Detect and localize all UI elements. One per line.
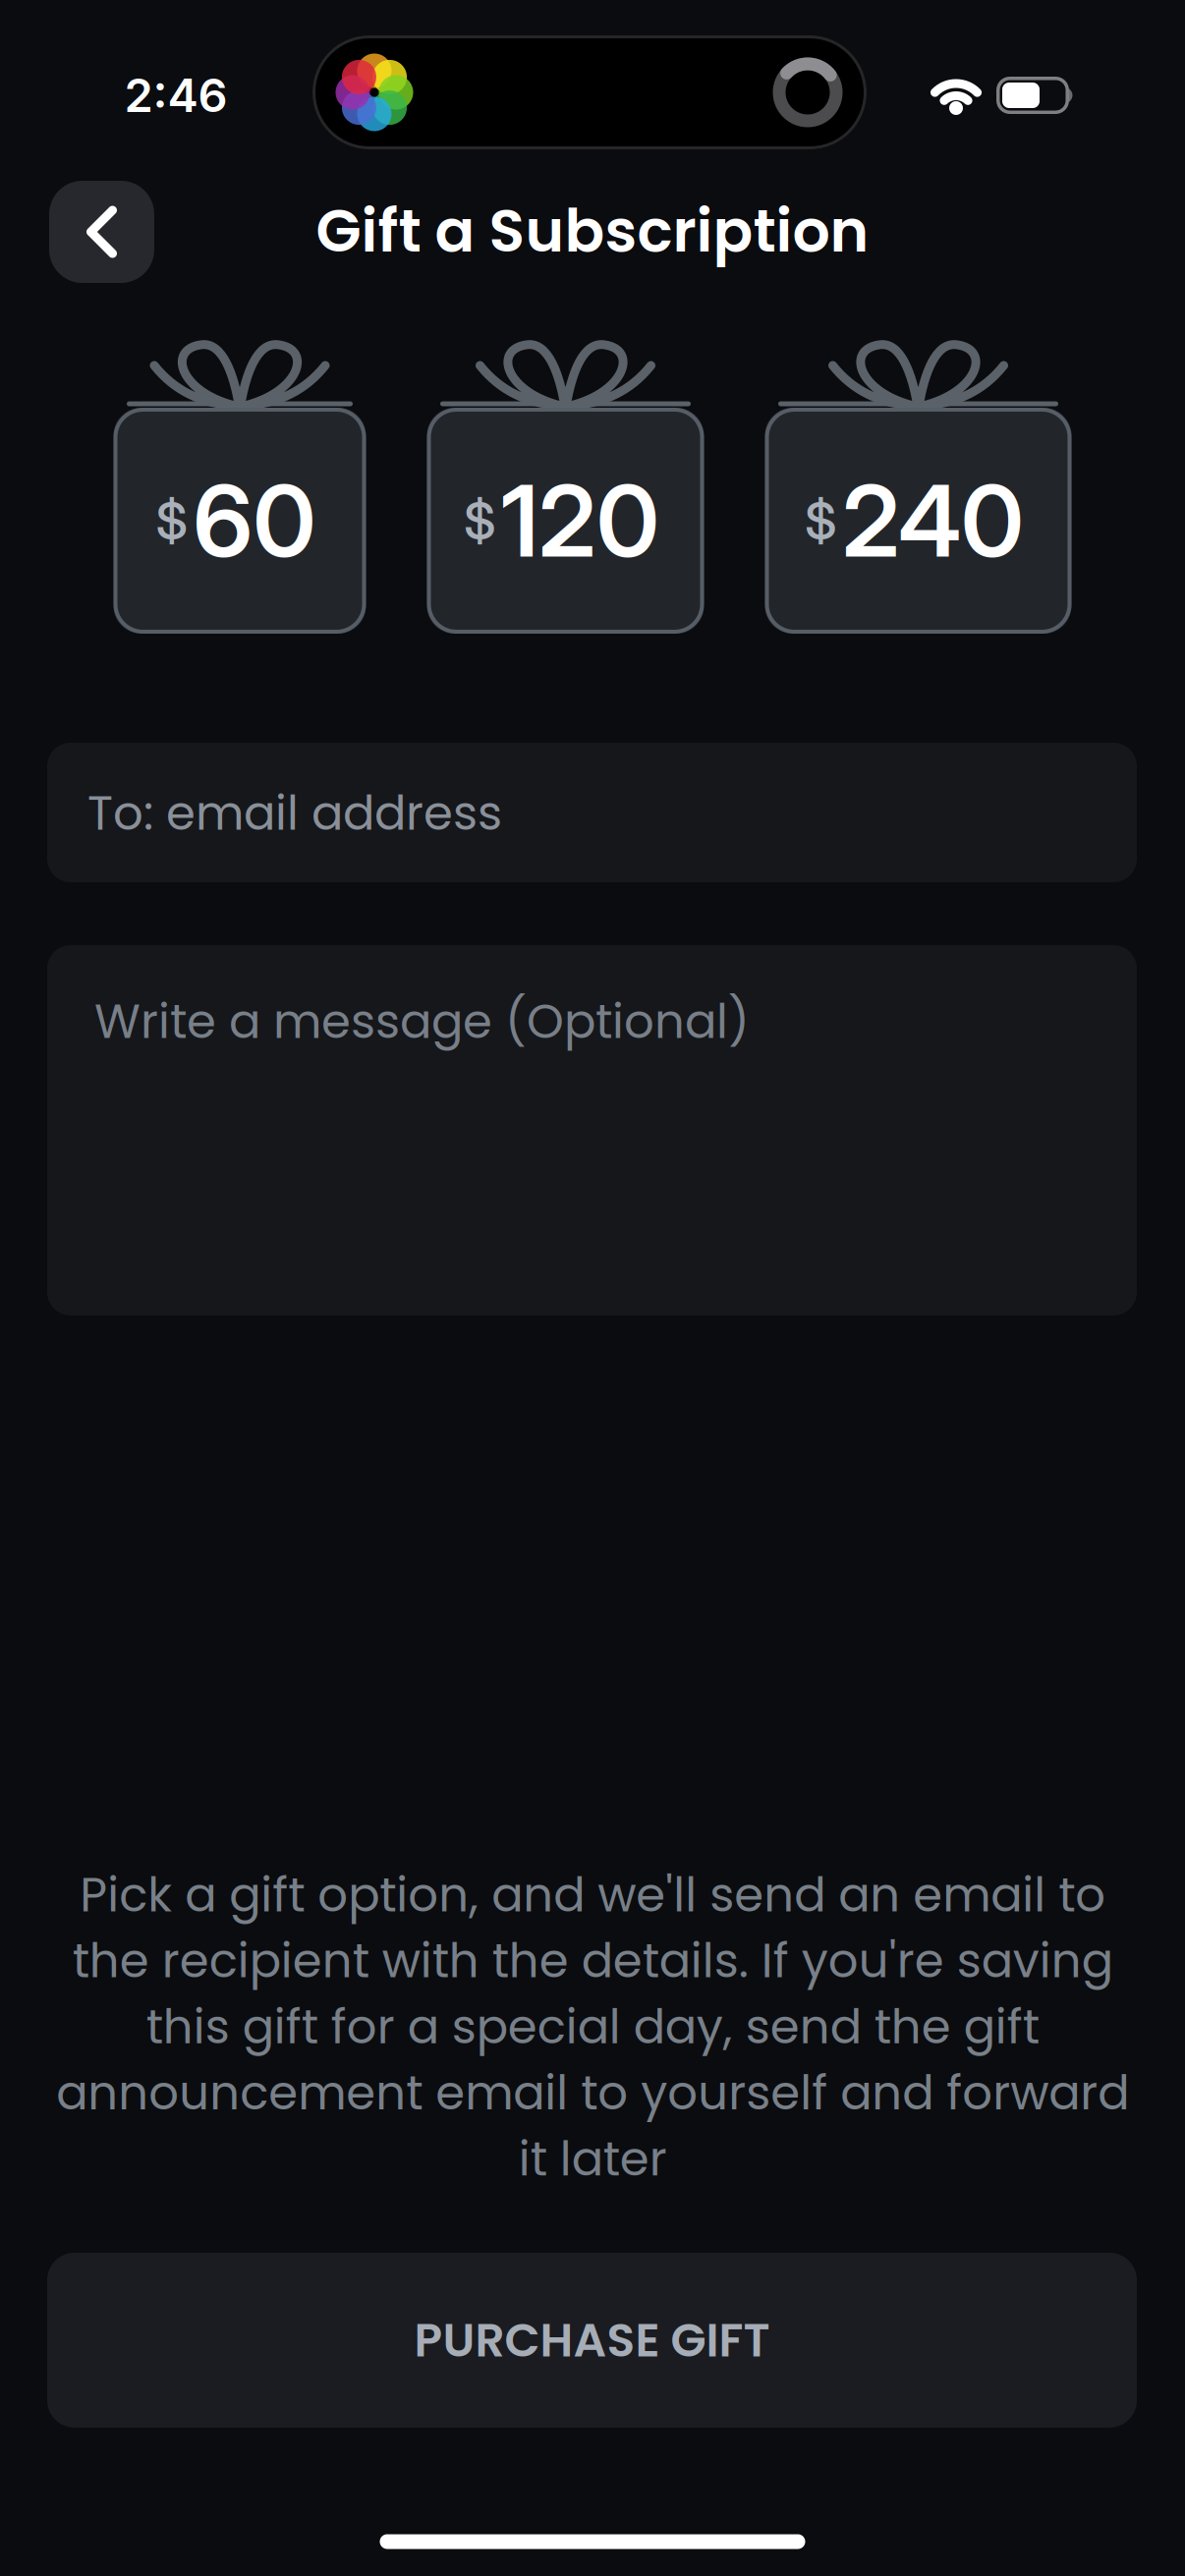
button[interactable]: Back (49, 181, 154, 283)
staticText: Write a message (Optional) (94, 988, 750, 1054)
staticText: PURCHASE GIFT (414, 2308, 770, 2373)
button[interactable]: $ (765, 339, 1072, 634)
staticText: $ (156, 490, 188, 552)
staticText: Gift a Subscription (316, 190, 869, 272)
staticText: 240 (842, 461, 1024, 580)
staticText: $ (464, 490, 496, 552)
button[interactable]: Write a message (Optional) (47, 945, 1137, 1316)
button[interactable]: $ (113, 339, 366, 634)
staticText: Pick a gift option, and we'll send an em… (56, 1862, 1129, 2192)
button[interactable]: To: email address (47, 743, 1137, 882)
staticText: 120 (501, 461, 659, 580)
staticText: 60 (193, 461, 316, 580)
button[interactable]: $ (427, 339, 704, 634)
button[interactable]: PURCHASE GIFT (47, 2253, 1137, 2428)
staticText: 2:46 (124, 67, 227, 123)
staticText: $ (805, 490, 837, 552)
staticText: To: email address (87, 780, 502, 846)
